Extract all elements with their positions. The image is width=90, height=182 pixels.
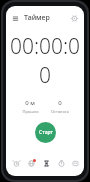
- staticText: Осталось: [51, 109, 69, 114]
- staticText: Старт: [39, 129, 53, 136]
- staticText: 0 м: [25, 99, 35, 107]
- staticText: Прошло: [22, 109, 39, 114]
- button[interactable]: Menu: [10, 13, 21, 24]
- button[interactable]: Bedtime: [69, 156, 81, 170]
- button[interactable]: Stopwatch: [54, 156, 69, 170]
- staticText: 00:00:00: [6, 32, 84, 90]
- button[interactable]: Settings: [69, 13, 80, 24]
- button[interactable]: 0 м: [15, 99, 45, 114]
- button[interactable]: Timer: [39, 156, 54, 170]
- button[interactable]: Старт: [35, 122, 56, 143]
- staticText: Таймер: [24, 13, 50, 23]
- button[interactable]: 0: [45, 99, 75, 114]
- button[interactable]: World clock: [24, 156, 39, 170]
- button[interactable]: Alarm: [9, 156, 24, 170]
- staticText: 0: [58, 99, 62, 107]
